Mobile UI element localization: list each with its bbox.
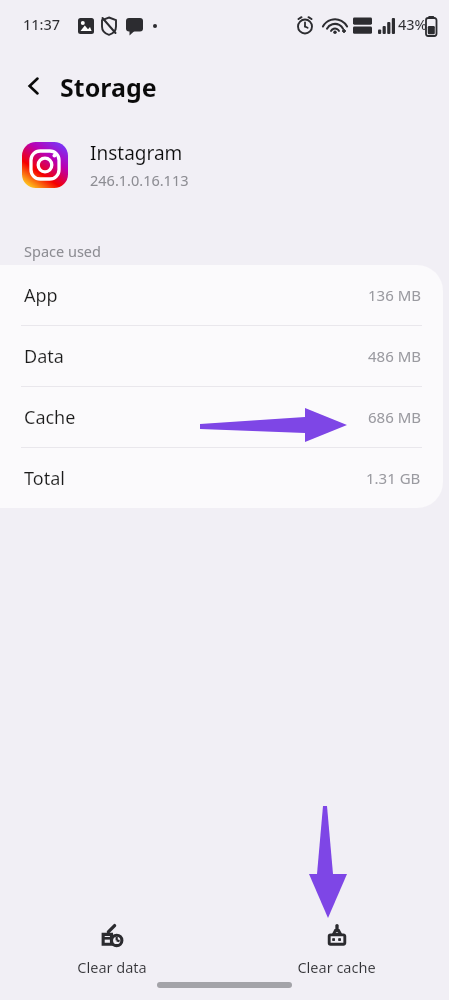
staticText: App [24, 283, 58, 308]
staticText: Total [24, 466, 65, 491]
staticText: Space used [24, 241, 101, 261]
staticText: Instagram [90, 140, 183, 166]
button[interactable]: Total [0, 448, 443, 508]
button[interactable]: Clear cache [224, 916, 449, 982]
button[interactable]: Back [12, 64, 56, 108]
button[interactable]: Data [0, 326, 443, 386]
staticText: 486 MB [368, 346, 421, 366]
button[interactable]: Clear data [0, 916, 224, 982]
staticText: Clear cache [297, 957, 376, 977]
staticText: 1.31 GB [366, 468, 421, 488]
button[interactable]: App [0, 265, 443, 325]
staticText: 246.1.0.16.113 [90, 170, 189, 190]
button[interactable]: Cache [0, 387, 443, 447]
staticText: 43% [398, 14, 427, 34]
staticText: 686 MB [368, 407, 421, 427]
staticText: 136 MB [368, 285, 421, 305]
staticText: Cache [24, 405, 76, 430]
staticText: 11:37 [23, 14, 61, 34]
staticText: Clear data [77, 957, 147, 977]
staticText: Data [24, 344, 64, 369]
staticText: Storage [60, 70, 157, 104]
